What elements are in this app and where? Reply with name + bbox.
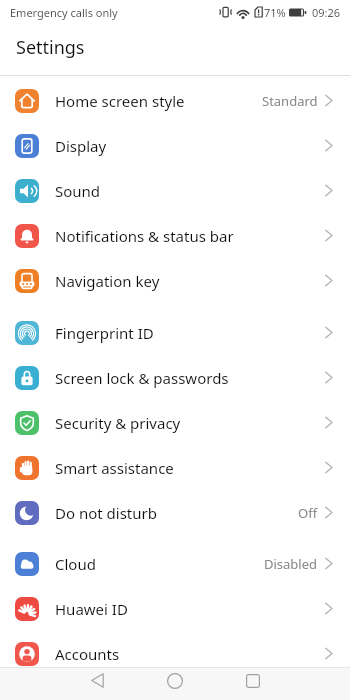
button[interactable]: Huawei ID (0, 586, 350, 631)
staticText: Fingerprint ID (55, 323, 325, 343)
button[interactable]: Screen lock & passwords (0, 355, 350, 400)
staticText: Sound (55, 181, 325, 201)
button[interactable]: Smart assistance (0, 445, 350, 490)
staticText: Emergency calls only (10, 5, 118, 20)
button[interactable]: Navigation key (0, 258, 350, 303)
staticText: Home screen style (55, 91, 262, 111)
button[interactable]: Do not disturb (0, 490, 350, 535)
staticText: Do not disturb (55, 503, 298, 523)
staticText: 09:26 (312, 5, 341, 20)
staticText: Notifications & status bar (55, 226, 325, 246)
staticText: Off (298, 504, 318, 522)
button[interactable]: Home screen style (0, 78, 350, 123)
button[interactable]: Security & privacy (0, 400, 350, 445)
staticText: Accounts (55, 644, 325, 664)
button[interactable] (241, 667, 265, 694)
button[interactable]: Notifications & status bar (0, 213, 350, 258)
button[interactable]: Sound (0, 168, 350, 213)
button[interactable] (163, 667, 187, 694)
staticText: Standard (262, 92, 318, 110)
staticText: Cloud (55, 554, 264, 574)
staticText: Security & privacy (55, 413, 325, 433)
button[interactable]: Accounts (0, 631, 350, 676)
button[interactable]: Fingerprint ID (0, 310, 350, 355)
staticText: 71% (264, 5, 286, 20)
button[interactable] (85, 667, 109, 694)
staticText: Settings (16, 35, 85, 60)
staticText: Screen lock & passwords (55, 368, 325, 388)
staticText: Smart assistance (55, 458, 325, 478)
staticText: Huawei ID (55, 599, 325, 619)
button[interactable]: Display (0, 123, 350, 168)
staticText: Display (55, 136, 325, 156)
staticText: Navigation key (55, 271, 325, 291)
staticText: Disabled (264, 555, 318, 573)
button[interactable]: Cloud (0, 541, 350, 586)
